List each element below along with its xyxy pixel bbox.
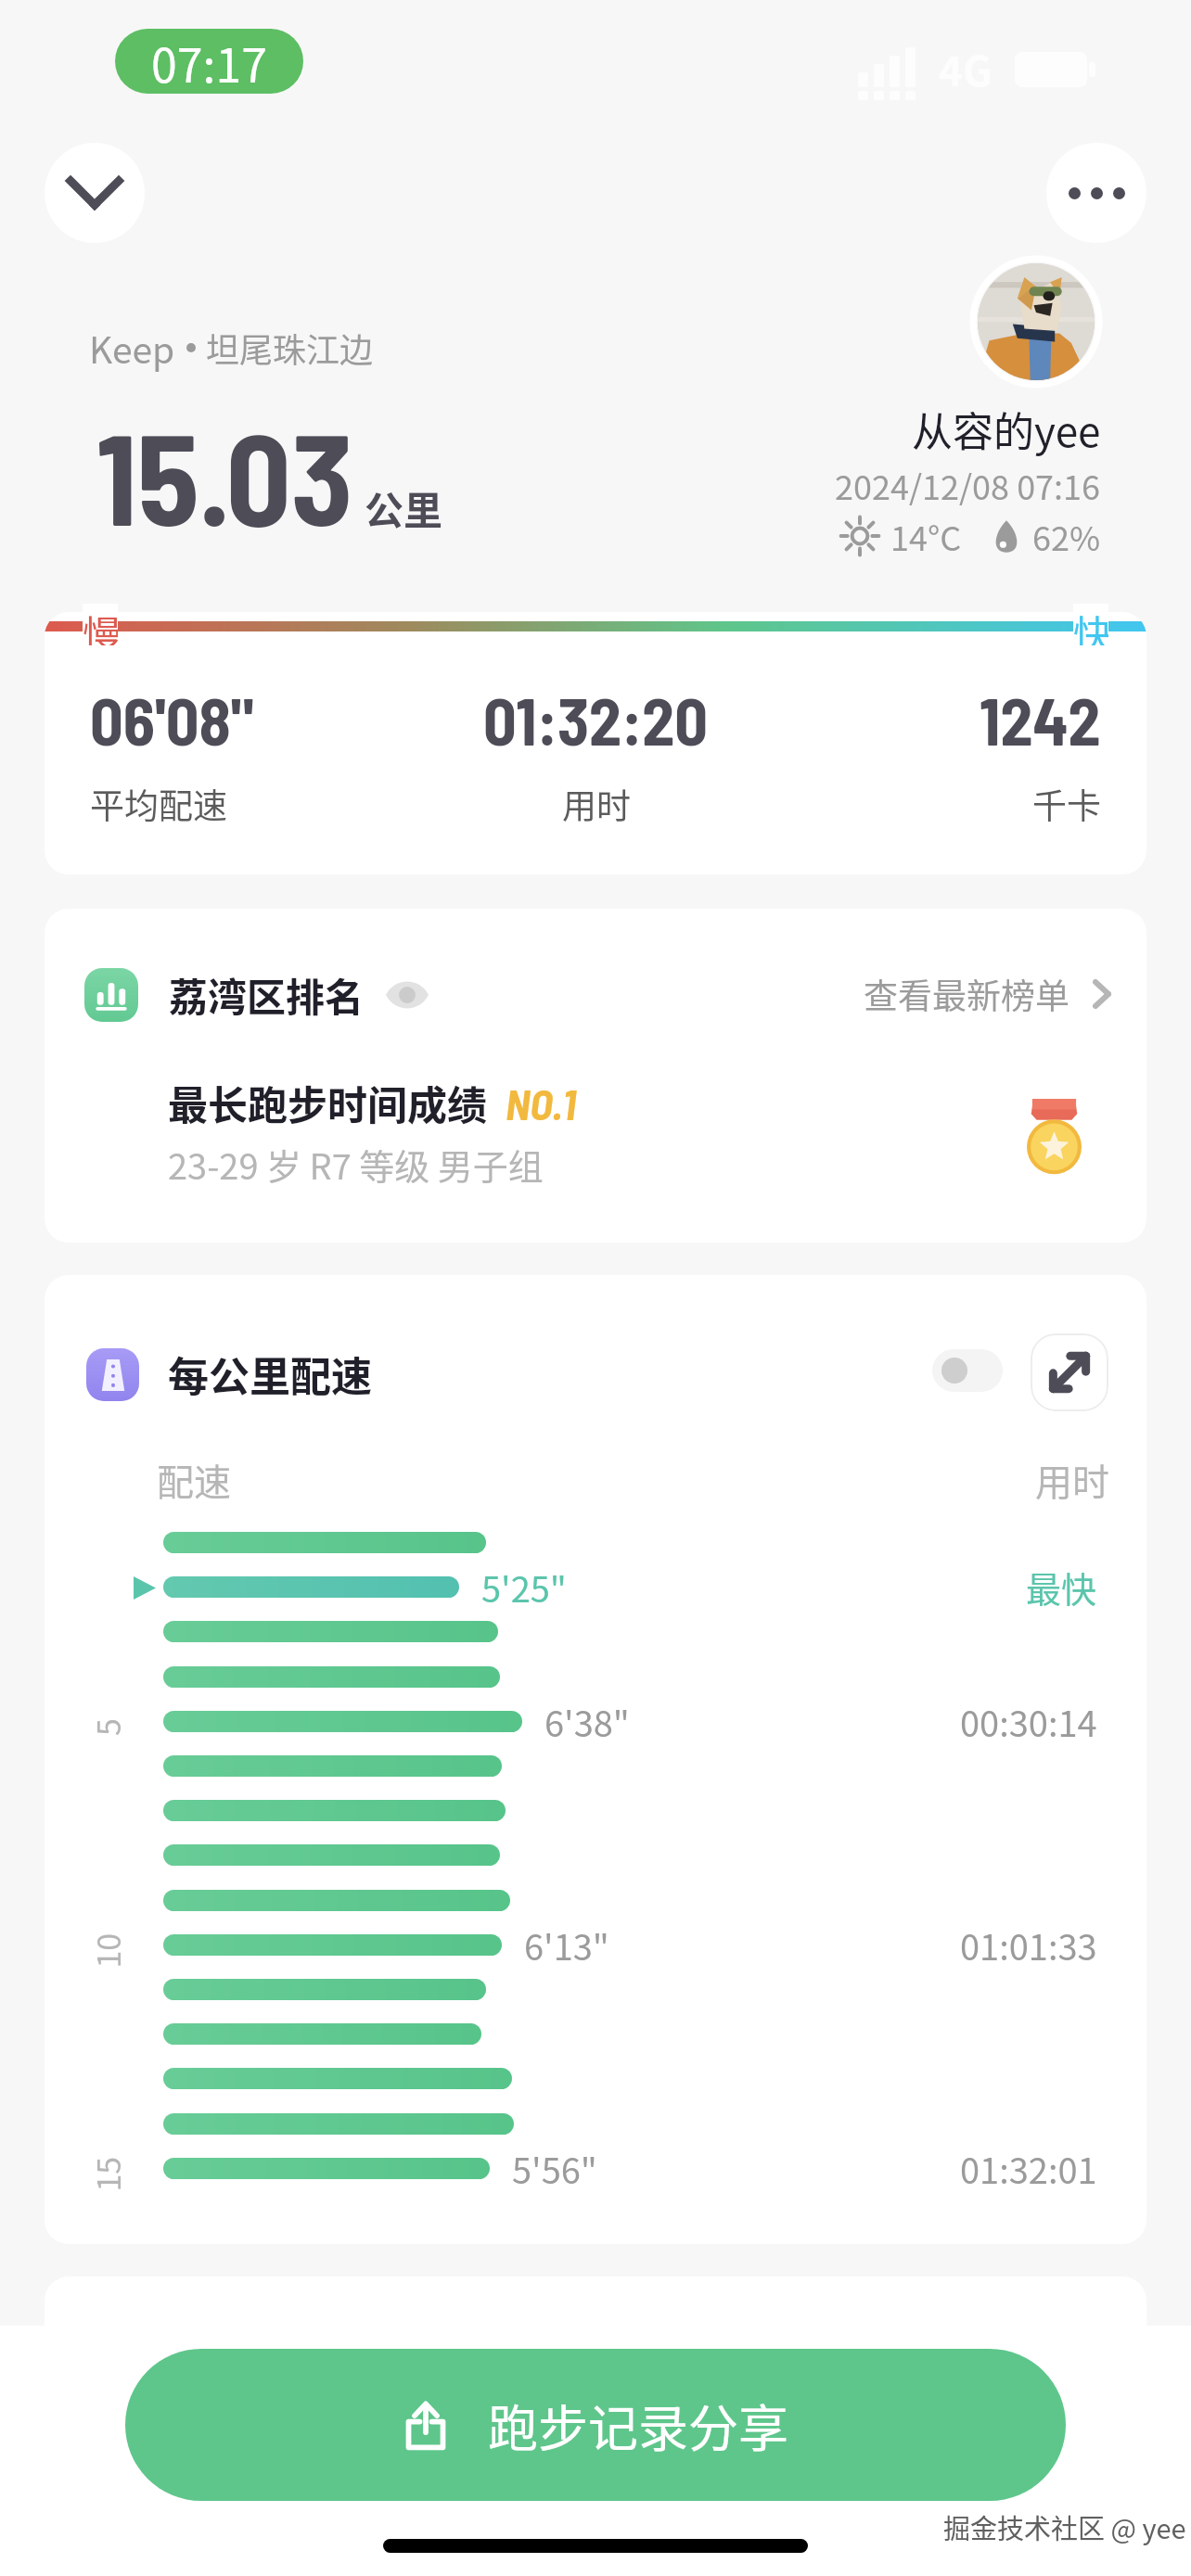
staticText: 荔湾区排名	[169, 966, 365, 1023]
staticText: 23-29 岁 R7 等级 男子组	[168, 1139, 544, 1190]
staticText: 从容的yee	[912, 400, 1101, 459]
staticText: 5'25"	[481, 1562, 567, 1612]
staticText: 07:17	[151, 29, 267, 94]
staticText: 14°C	[890, 512, 962, 560]
staticText: 5	[84, 1718, 130, 1736]
staticText: 坦尾珠江边	[206, 324, 374, 372]
staticText: 千卡	[1032, 779, 1101, 829]
staticText: 平均配速	[90, 779, 227, 829]
staticText: 01:32:20	[483, 681, 709, 759]
staticText: 06'08"	[90, 681, 254, 759]
staticText: 快	[1073, 604, 1108, 645]
staticText: 2024/12/08 07:16	[835, 461, 1101, 509]
staticText: NO.1	[506, 1078, 576, 1129]
staticText: 6'38"	[544, 1696, 630, 1746]
button[interactable]: More options	[1046, 143, 1146, 243]
staticText: 跑步记录分享	[488, 2389, 788, 2461]
staticText: Keep	[89, 322, 175, 374]
button[interactable]: Toggle chart	[932, 1349, 1003, 1392]
staticText: 00:30:14	[960, 1696, 1097, 1746]
button[interactable]: Expand chart	[1031, 1333, 1108, 1411]
staticText: 慢	[83, 604, 118, 645]
staticText: 用时	[1035, 1453, 1109, 1507]
staticText: 01:32:01	[960, 2143, 1097, 2193]
staticText: 查看最新榜单	[864, 969, 1069, 1019]
staticText: 配速	[157, 1453, 231, 1507]
staticText: 最快	[1026, 1562, 1097, 1612]
staticText: 每公里配速	[168, 1345, 372, 1404]
staticText: 用时	[562, 779, 631, 829]
staticText: 1242	[980, 681, 1101, 759]
staticText: 10	[84, 1933, 129, 1968]
staticText: 15.03	[96, 399, 353, 551]
staticText: 掘金技术社区 @ yee	[943, 2507, 1186, 2546]
staticText: 6'13"	[524, 1919, 609, 1970]
button[interactable]: Avatar	[978, 263, 1095, 380]
staticText: 最长跑步时间成绩	[168, 1074, 487, 1131]
staticText: 01:01:33	[960, 1919, 1097, 1970]
staticText: 62%	[1032, 512, 1101, 560]
staticText: 15	[84, 2156, 129, 2192]
staticText: 5'56"	[512, 2143, 597, 2193]
button[interactable]: 跑步记录分享	[125, 2349, 1066, 2501]
staticText: 公里	[365, 479, 443, 536]
button[interactable]: Collapse	[45, 143, 145, 243]
button[interactable]: 荔湾区排名	[45, 909, 1146, 1243]
